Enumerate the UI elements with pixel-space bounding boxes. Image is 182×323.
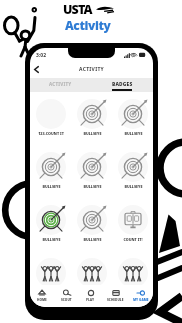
- staticText: BULLSEYE: [42, 184, 61, 189]
- button[interactable]: PLAY: [78, 285, 103, 307]
- staticText: Activity: [65, 17, 111, 33]
- button[interactable]: [30, 251, 71, 304]
- button[interactable]: BULLSEYE: [112, 145, 153, 198]
- staticText: BULLSEYE: [83, 131, 102, 136]
- button[interactable]: SCOUT: [54, 285, 78, 307]
- button[interactable]: BULLSEYE: [30, 198, 71, 251]
- staticText: USTA: [63, 1, 92, 18]
- button[interactable]: Back: [31, 64, 42, 75]
- staticText: BULLSEYE: [42, 237, 61, 242]
- button[interactable]: HOME: [30, 285, 54, 307]
- button[interactable]: MY GAME: [128, 285, 153, 307]
- staticText: SCHEDULE: [107, 298, 124, 302]
- staticText: BADGES: [112, 81, 133, 88]
- staticText: HOME: [37, 298, 47, 302]
- button[interactable]: [71, 251, 112, 304]
- staticText: PLAY: [86, 298, 95, 302]
- button[interactable]: BULLSEYE: [71, 145, 112, 198]
- button[interactable]: BULLSEYE: [71, 198, 112, 251]
- button[interactable]: ACTIVITY: [30, 78, 91, 92]
- staticText: 3:02: [36, 52, 46, 59]
- button[interactable]: SCHEDULE: [103, 285, 128, 307]
- button[interactable]: COUNT IT!: [112, 198, 153, 251]
- staticText: BULLSEYE: [83, 184, 102, 189]
- staticText: ACTIVITY: [79, 66, 105, 73]
- staticText: COUNT IT!: [123, 237, 143, 242]
- staticText: BULLSEYE: [83, 237, 102, 242]
- staticText: BULLSEYE: [124, 131, 143, 136]
- button[interactable]: [112, 251, 153, 304]
- staticText: BULLSEYE: [124, 184, 143, 189]
- staticText: SCOUT: [61, 298, 72, 302]
- button[interactable]: BULLSEYE: [112, 92, 153, 145]
- button[interactable]: BULLSEYE: [30, 145, 71, 198]
- staticText: MY GAME: [133, 298, 149, 302]
- button[interactable]: BULLSEYE: [71, 92, 112, 145]
- staticText: 123-COUNT IT: [38, 131, 64, 136]
- button[interactable]: 123-COUNT IT: [30, 92, 71, 145]
- staticText: ACTIVITY: [49, 81, 72, 87]
- button[interactable]: BADGES: [91, 78, 153, 92]
